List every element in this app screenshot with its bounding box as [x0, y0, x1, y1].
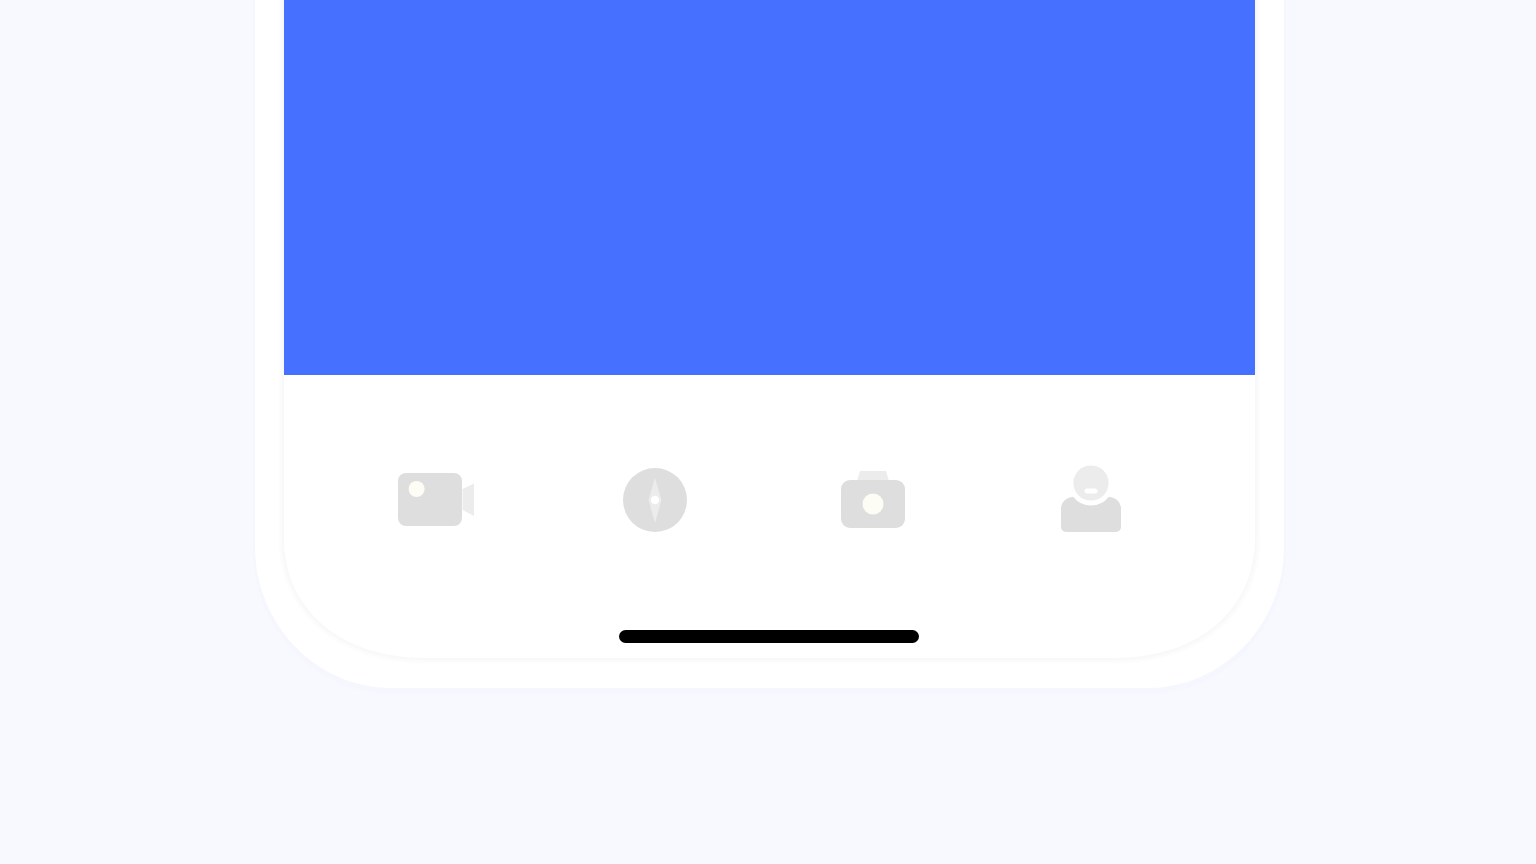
button[interactable]: Profile [1036, 445, 1146, 555]
button[interactable]: Explore [600, 445, 710, 555]
button[interactable]: Camera [818, 445, 928, 555]
button[interactable]: Video [382, 445, 492, 555]
